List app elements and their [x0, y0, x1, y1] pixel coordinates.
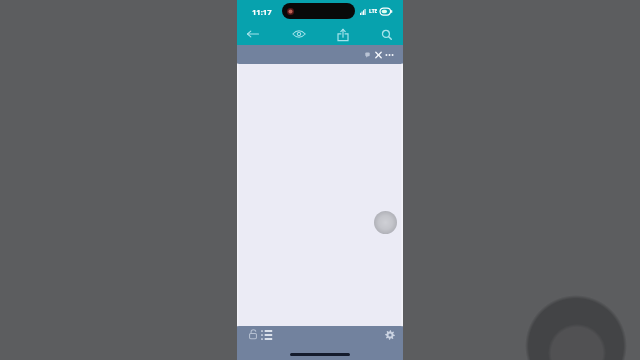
button[interactable]: Share	[330, 24, 356, 46]
button[interactable]: Close	[372, 48, 385, 62]
staticText: LTE	[369, 8, 378, 15]
button[interactable]: Search	[374, 24, 400, 46]
button[interactable]: Table of contents	[260, 327, 274, 343]
button[interactable]: More options	[383, 48, 396, 62]
button[interactable]: Preview	[286, 23, 312, 45]
staticText: 11:17	[252, 7, 272, 17]
button[interactable]: Lock	[246, 327, 260, 343]
button[interactable]: Quick action	[374, 211, 397, 234]
button[interactable]: Back	[240, 23, 266, 45]
button[interactable]: Comments	[361, 48, 374, 62]
button[interactable]: Settings	[383, 327, 397, 343]
